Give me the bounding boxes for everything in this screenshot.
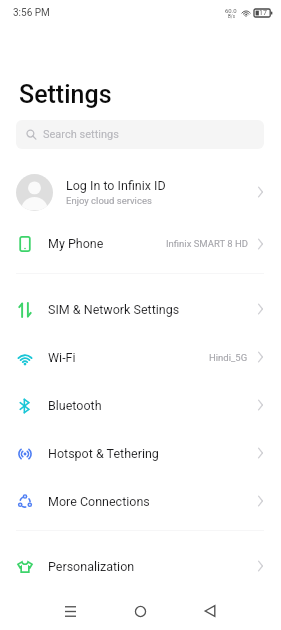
button[interactable]: Wi-Fi bbox=[0, 333, 281, 381]
staticText: My Phone bbox=[48, 236, 104, 251]
staticText: Hotspot & Tethering bbox=[48, 446, 159, 461]
button[interactable]: Log In to Infinix ID bbox=[0, 163, 281, 221]
staticText: More Connections bbox=[48, 494, 150, 509]
staticText: Hindi_5G bbox=[209, 352, 248, 363]
staticText: Settings bbox=[19, 80, 112, 109]
button[interactable]: More Connections bbox=[0, 477, 281, 525]
staticText: B/s bbox=[228, 14, 235, 19]
button[interactable]: Search settings bbox=[16, 120, 264, 149]
button[interactable]: Hotspot & Tethering bbox=[0, 429, 281, 477]
staticText: Bluetooth bbox=[48, 398, 102, 413]
staticText: Infinix SMART 8 HD bbox=[166, 238, 248, 249]
staticText: 60.0 bbox=[225, 7, 237, 14]
staticText: SIM & Network Settings bbox=[48, 302, 180, 317]
staticText: Personalization bbox=[48, 559, 135, 574]
staticText: 3:56 PM bbox=[13, 7, 50, 19]
staticText: Search settings bbox=[43, 128, 119, 141]
button[interactable]: Personalization bbox=[0, 542, 281, 590]
staticText: Wi-Fi bbox=[48, 350, 76, 365]
button[interactable]: Recents bbox=[48, 589, 92, 630]
button[interactable]: Back bbox=[188, 589, 232, 630]
button[interactable]: Bluetooth bbox=[0, 381, 281, 429]
button[interactable]: Home bbox=[118, 589, 162, 630]
staticText: 17 bbox=[259, 9, 267, 17]
staticText: Enjoy cloud services bbox=[66, 195, 152, 206]
staticText: Log In to Infinix ID bbox=[66, 178, 166, 193]
button[interactable]: My Phone bbox=[0, 220, 281, 267]
button[interactable]: SIM & Network Settings bbox=[0, 285, 281, 333]
